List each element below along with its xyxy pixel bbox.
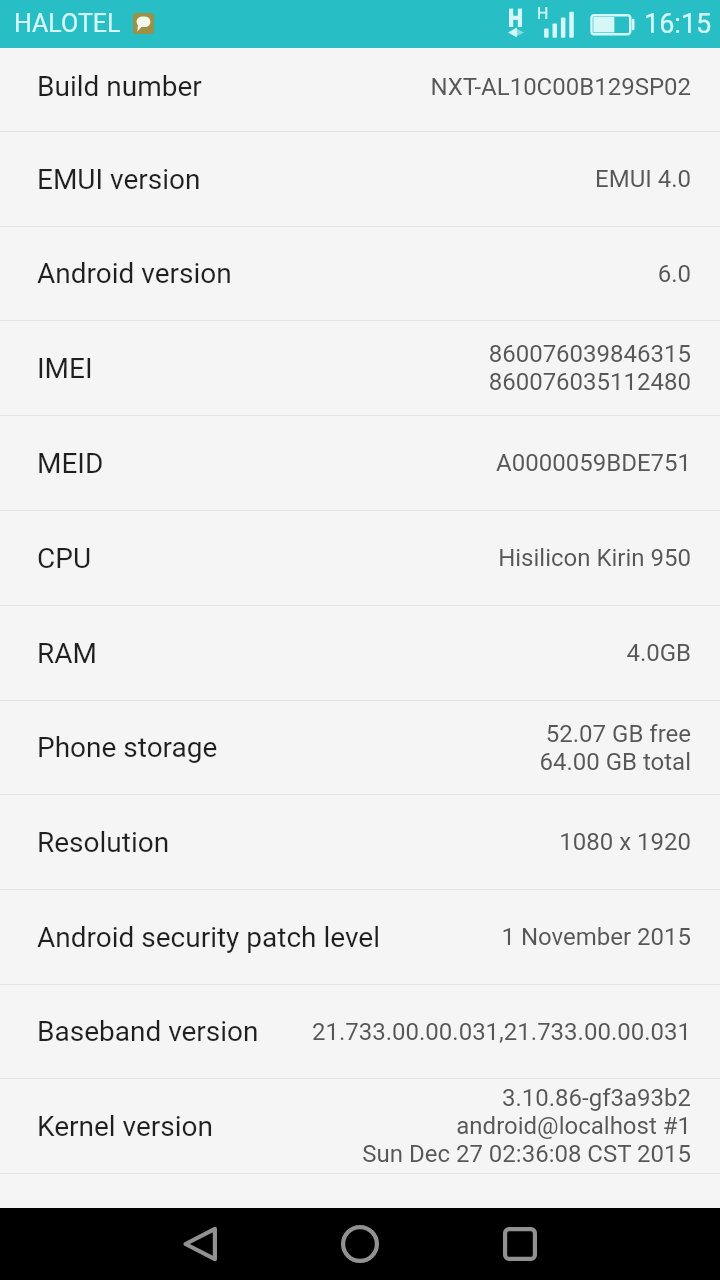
staticText: Phone storage — [37, 731, 218, 764]
button[interactable]: Baseband version — [0, 985, 720, 1078]
staticText: Hisilicon Kirin 950 — [498, 544, 691, 572]
button[interactable]: MEID — [0, 416, 720, 510]
staticText: android@localhost #1 — [456, 1112, 691, 1140]
staticText: 860076035112480 — [488, 368, 691, 396]
button[interactable]: EMUI version — [0, 132, 720, 226]
staticText: Kernel version — [37, 1110, 214, 1143]
staticText: 1 November 2015 — [501, 923, 691, 951]
staticText: 6.0 — [657, 260, 691, 288]
button[interactable]: Home — [300, 1208, 420, 1280]
staticText: 21.733.00.00.031,21.733.00.00.031 — [311, 1018, 691, 1046]
staticText: 1080 x 1920 — [559, 828, 691, 856]
staticText: 52.07 GB free — [545, 720, 691, 748]
button[interactable]: Recents — [460, 1208, 580, 1280]
button[interactable]: Android security patch level — [0, 890, 720, 984]
staticText: Android version — [37, 257, 232, 290]
staticText: 4.0GB — [626, 639, 691, 667]
staticText: EMUI 4.0 — [595, 165, 691, 193]
staticText: CPU — [37, 542, 92, 575]
staticText: EMUI version — [37, 163, 201, 196]
staticText: HALOTEL — [14, 9, 121, 38]
staticText: Baseband version — [37, 1015, 259, 1048]
staticText: Android security patch level — [37, 921, 380, 954]
button[interactable]: Android version — [0, 227, 720, 320]
button[interactable]: Phone storage — [0, 701, 720, 794]
staticText: MEID — [37, 447, 104, 480]
button[interactable]: Resolution — [0, 795, 720, 889]
staticText: NXT-AL10C00B129SP02 — [430, 73, 691, 101]
button[interactable]: RAM — [0, 606, 720, 700]
button[interactable]: Build number — [0, 48, 720, 131]
staticText: 16:15 — [644, 8, 712, 40]
staticText: 860076039846315 — [488, 340, 691, 368]
staticText: H — [537, 4, 549, 23]
button[interactable]: Kernel version — [0, 1079, 720, 1173]
staticText: Build number — [37, 70, 202, 103]
button[interactable]: CPU — [0, 511, 720, 605]
button[interactable]: IMEI — [0, 321, 720, 415]
button[interactable]: Back — [140, 1208, 260, 1280]
staticText: 3.10.86-gf3a93b2 — [501, 1084, 691, 1112]
staticText: RAM — [37, 637, 97, 670]
staticText: IMEI — [37, 352, 93, 385]
staticText: Sun Dec 27 02:36:08 CST 2015 — [362, 1140, 691, 1168]
staticText: Resolution — [37, 826, 170, 859]
staticText: 64.00 GB total — [539, 748, 691, 776]
staticText: A0000059BDE751 — [496, 449, 691, 477]
